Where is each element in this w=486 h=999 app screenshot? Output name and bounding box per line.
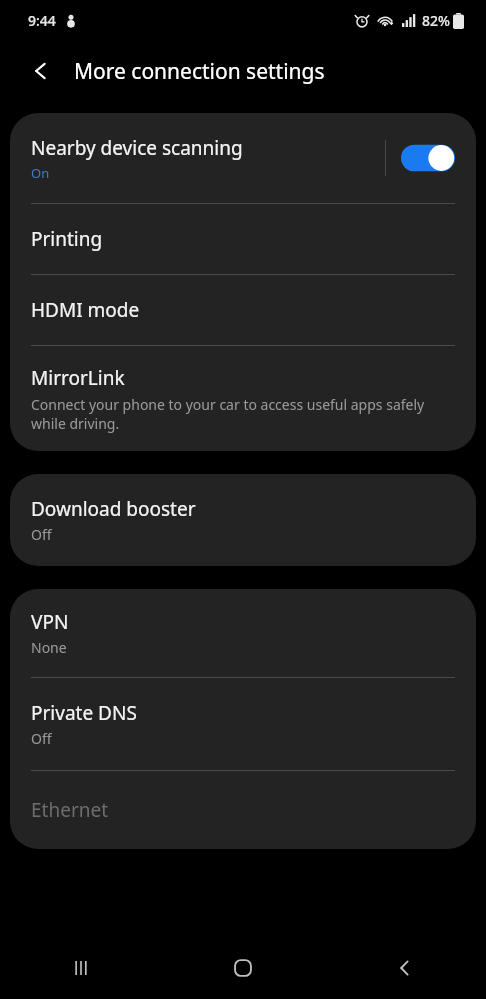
- button[interactable]: Recents: [0, 937, 162, 999]
- button[interactable]: Nearby device scanning: [10, 113, 476, 203]
- button[interactable]: VPN: [10, 589, 476, 677]
- button[interactable]: Printing: [10, 204, 476, 274]
- button[interactable]: Download booster: [10, 474, 476, 566]
- staticText: Off: [31, 729, 52, 748]
- staticText: More connection settings: [74, 57, 325, 86]
- staticText: Nearby device scanning: [31, 135, 243, 161]
- button[interactable]: Back: [324, 937, 486, 999]
- staticText: Download booster: [31, 496, 196, 522]
- button[interactable]: Home: [162, 937, 324, 999]
- button[interactable]: HDMI mode: [10, 275, 476, 345]
- staticText: 82%: [422, 11, 450, 30]
- button[interactable]: Private DNS: [10, 678, 476, 770]
- staticText: Private DNS: [31, 700, 137, 726]
- staticText: MirrorLink: [31, 365, 125, 391]
- staticText: Connect your phone to your car to access…: [31, 395, 454, 433]
- staticText: 9:44: [28, 11, 56, 30]
- button[interactable]: Ethernet: [10, 771, 476, 849]
- button[interactable]: Nearby device scanning toggle: [401, 144, 455, 172]
- staticText: None: [31, 638, 67, 657]
- staticText: HDMI mode: [31, 297, 140, 323]
- staticText: VPN: [31, 609, 69, 635]
- button[interactable]: MirrorLink: [10, 346, 476, 451]
- staticText: Off: [31, 525, 52, 544]
- button[interactable]: Back: [18, 48, 64, 94]
- staticText: Ethernet: [31, 797, 109, 823]
- staticText: On: [31, 164, 50, 182]
- staticText: Printing: [31, 226, 103, 252]
